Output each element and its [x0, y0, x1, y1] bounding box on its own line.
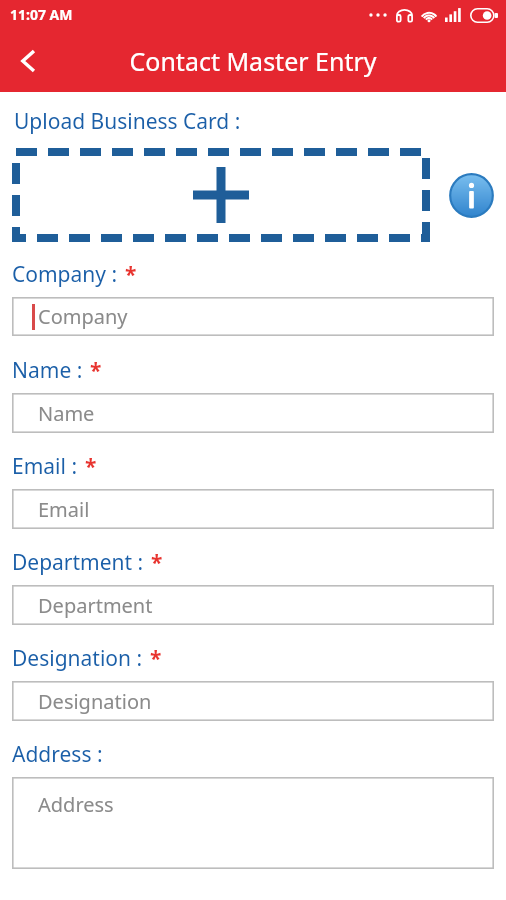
button[interactable]: Address — [12, 777, 494, 869]
staticText: Department : — [12, 548, 144, 577]
staticText: Designation : — [12, 644, 143, 673]
staticText: * — [151, 548, 163, 577]
button[interactable]: Upload business card — [12, 148, 430, 242]
staticText: * — [125, 260, 137, 289]
staticText: Email — [38, 496, 90, 523]
button[interactable]: Back — [0, 33, 56, 89]
button[interactable]: Name — [12, 393, 494, 433]
staticText: Company : — [12, 260, 118, 289]
button[interactable]: Email — [12, 489, 494, 529]
staticText: * — [90, 356, 102, 385]
button[interactable]: Designation — [12, 681, 494, 721]
staticText: Upload Business Card : — [14, 107, 241, 136]
staticText: Address : — [12, 740, 103, 769]
staticText: Department — [38, 592, 153, 619]
staticText: Address — [38, 791, 114, 818]
button[interactable]: Information — [448, 172, 494, 218]
staticText: * — [150, 644, 162, 673]
staticText: Name — [38, 400, 95, 427]
staticText: Company — [38, 303, 128, 330]
staticText: * — [85, 452, 97, 481]
button[interactable]: Company — [12, 297, 494, 336]
staticText: Contact Master Entry — [129, 44, 377, 78]
staticText: Email : — [12, 452, 78, 481]
button[interactable]: Department — [12, 585, 494, 625]
staticText: Designation — [38, 688, 152, 715]
staticText: 11:07 AM — [10, 5, 73, 24]
staticText: Name : — [12, 356, 83, 385]
